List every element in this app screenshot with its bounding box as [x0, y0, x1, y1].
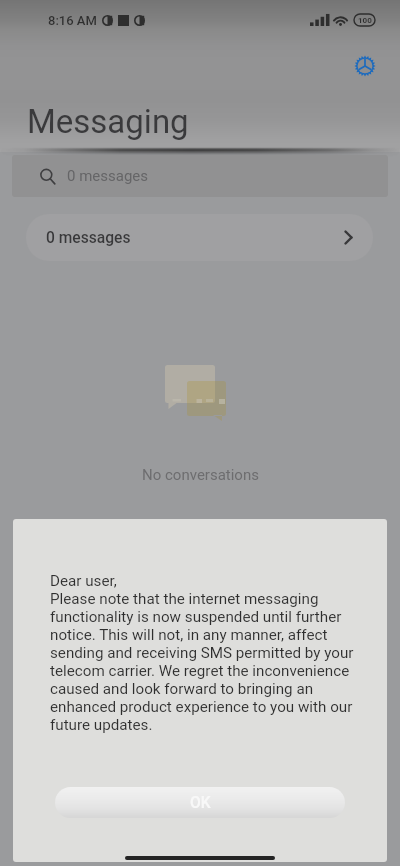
staticText: No conversations — [142, 466, 259, 484]
staticText: OK — [190, 794, 211, 812]
staticText: 100 — [358, 16, 372, 25]
staticText: 8:16 AM — [48, 13, 97, 28]
staticText: Messaging — [27, 102, 189, 141]
button[interactable]: Settings — [351, 52, 379, 80]
staticText: Dear user, Please note that the internet… — [50, 572, 368, 734]
button[interactable]: 0 messages — [12, 155, 388, 197]
button[interactable]: 0 messages — [26, 214, 373, 261]
staticText: 0 messages — [46, 229, 131, 247]
button[interactable]: OK — [55, 787, 345, 818]
staticText: 0 messages — [67, 167, 149, 185]
